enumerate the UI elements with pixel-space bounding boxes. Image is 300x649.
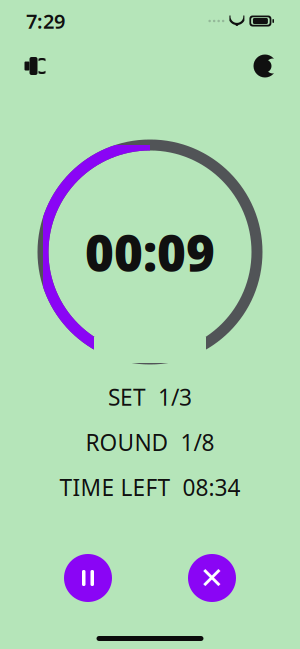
button[interactable]: Pause — [64, 554, 112, 602]
staticText: TIME LEFT 08:34 — [59, 472, 240, 502]
staticText: ROUND 1/8 — [85, 427, 214, 457]
button[interactable]: Sound — [12, 43, 58, 89]
staticText: ✕ — [199, 561, 224, 595]
button[interactable]: Stop — [188, 554, 236, 602]
staticText: 00:09 — [85, 219, 215, 285]
staticText: SET 1/3 — [108, 382, 192, 412]
staticText: 7:29 — [26, 8, 65, 34]
button[interactable]: Appearance — [242, 43, 288, 89]
